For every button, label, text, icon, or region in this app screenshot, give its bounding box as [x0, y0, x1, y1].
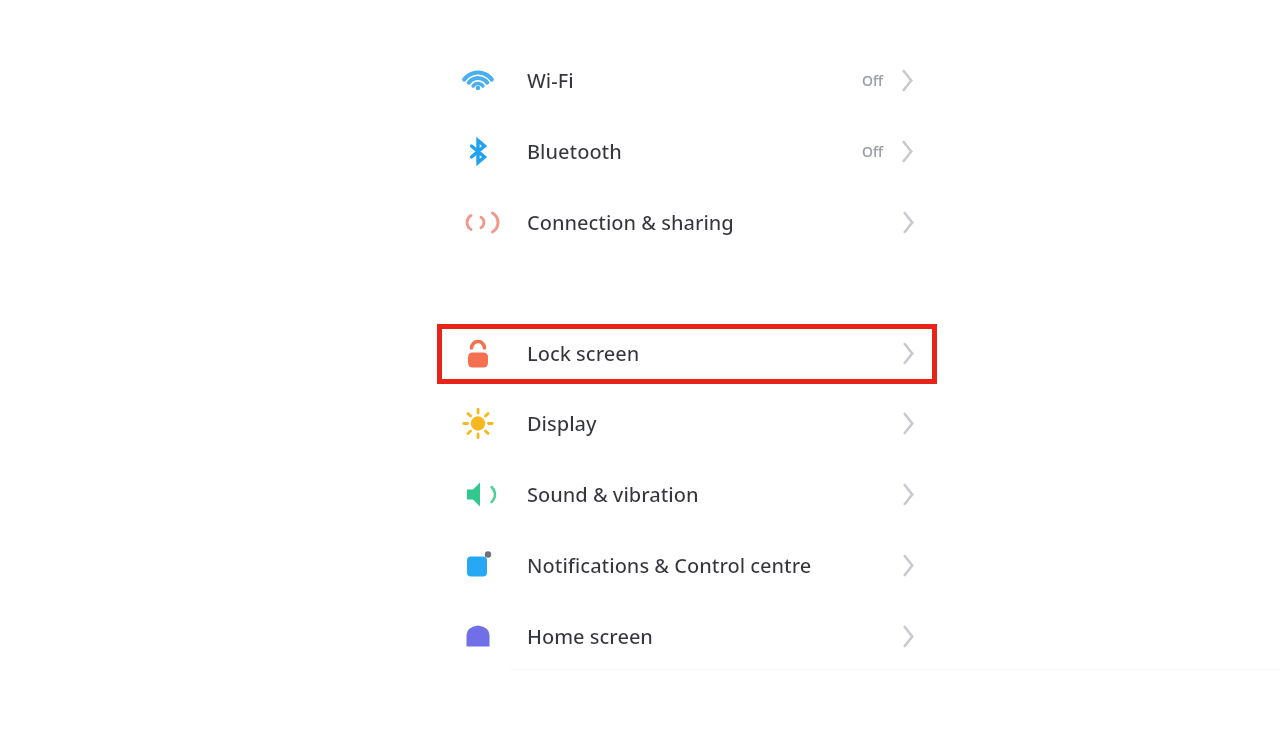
- staticText: Off: [843, 142, 883, 161]
- staticText: Home screen: [527, 623, 653, 650]
- button[interactable]: Lock screen: [437, 318, 937, 389]
- button[interactable]: Connection & sharing: [437, 187, 937, 258]
- button[interactable]: Notifications & Control centre: [437, 530, 937, 601]
- staticText: Bluetooth: [527, 138, 622, 165]
- staticText: Connection & sharing: [527, 209, 734, 236]
- staticText: Wi-Fi: [527, 67, 574, 94]
- button[interactable]: Wi-Fi: [437, 45, 937, 116]
- staticText: Sound & vibration: [527, 481, 699, 508]
- button[interactable]: Display: [437, 388, 937, 459]
- button[interactable]: Bluetooth: [437, 116, 937, 187]
- staticText: Notifications & Control centre: [527, 552, 812, 579]
- staticText: Off: [843, 71, 883, 90]
- staticText: Lock screen: [527, 340, 640, 367]
- button[interactable]: Sound & vibration: [437, 459, 937, 530]
- button[interactable]: Home screen: [437, 601, 937, 672]
- staticText: Display: [527, 410, 597, 437]
